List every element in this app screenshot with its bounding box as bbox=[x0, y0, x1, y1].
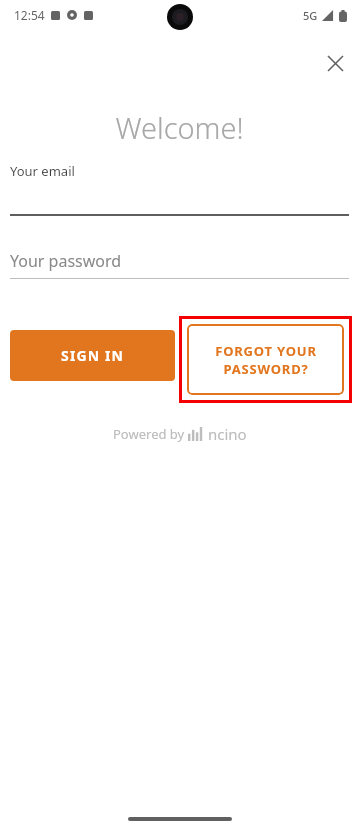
staticText: Your email bbox=[10, 162, 75, 180]
staticText: Welcome! bbox=[115, 108, 244, 147]
staticText: 12:54 bbox=[14, 7, 45, 23]
staticText: 5G bbox=[303, 8, 318, 23]
staticText: SIGN IN bbox=[61, 346, 124, 365]
staticText: Your password bbox=[10, 250, 122, 272]
staticText: ncino bbox=[208, 424, 247, 444]
button[interactable]: Your email bbox=[10, 162, 349, 216]
staticText: Powered by bbox=[113, 425, 188, 443]
button[interactable]: Your password bbox=[10, 250, 349, 279]
button[interactable]: FORGOT YOUR PASSWORD? bbox=[187, 324, 344, 395]
staticText: FORGOT YOUR PASSWORD? bbox=[215, 342, 317, 378]
button[interactable]: Close bbox=[318, 46, 352, 80]
button[interactable]: SIGN IN bbox=[10, 330, 175, 381]
